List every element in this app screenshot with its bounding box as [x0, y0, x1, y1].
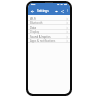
staticText: Wi-Fi — [30, 17, 37, 21]
staticText: Settings — [37, 9, 49, 13]
button[interactable]: More options — [65, 8, 70, 13]
button[interactable]: Wi-Fi — [28, 16, 70, 21]
staticText: Apps & notifications — [30, 39, 56, 43]
staticText: Display — [30, 30, 40, 34]
staticText: Data — [30, 26, 36, 30]
button[interactable]: Bluetooth — [28, 21, 70, 25]
button[interactable]: Display — [28, 30, 70, 34]
button[interactable]: Back — [29, 8, 35, 14]
button[interactable]: Apps & notifications — [28, 39, 70, 43]
button[interactable]: Sound & haptics — [28, 34, 70, 39]
button[interactable]: Data — [28, 25, 70, 30]
button[interactable]: Share — [59, 8, 65, 14]
staticText: Sound & haptics — [30, 35, 51, 39]
staticText: Bluetooth — [30, 21, 43, 25]
button[interactable]: Preview — [53, 8, 59, 14]
